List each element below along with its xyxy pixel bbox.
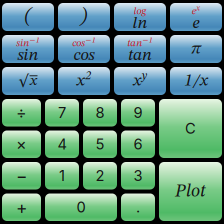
button[interactable]: ln: [114, 3, 166, 31]
button[interactable]: +: [2, 193, 41, 221]
button[interactable]: 7: [45, 99, 79, 126]
staticText: −: [16, 165, 27, 186]
button[interactable]: x to the 2: [58, 67, 110, 95]
staticText: .: [136, 198, 140, 216]
staticText: 1/x: [184, 72, 208, 90]
staticText: −1: [143, 36, 153, 44]
button[interactable]: Plot: [159, 162, 222, 221]
button[interactable]: 2: [83, 162, 117, 189]
button[interactable]: 4: [45, 130, 79, 158]
button[interactable]: ×: [2, 130, 41, 158]
staticText: 2: [85, 70, 91, 82]
staticText: 2: [95, 167, 104, 185]
button[interactable]: 0: [45, 193, 117, 221]
button[interactable]: cos: [58, 35, 110, 63]
staticText: e: [192, 6, 196, 17]
button[interactable]: 9: [121, 99, 155, 126]
staticText: 3: [133, 167, 142, 185]
staticText: x: [77, 72, 85, 90]
staticText: 6: [133, 135, 142, 153]
button[interactable]: −: [2, 162, 41, 189]
staticText: −1: [30, 36, 40, 44]
button[interactable]: ): [58, 3, 110, 31]
staticText: ÷: [16, 103, 27, 122]
staticText: sin: [17, 47, 38, 64]
button[interactable]: .: [121, 193, 155, 221]
staticText: 0: [76, 198, 85, 216]
staticText: 5: [95, 135, 104, 153]
button[interactable]: sin: [2, 35, 54, 63]
staticText: sin: [16, 38, 29, 49]
staticText: ln: [132, 15, 147, 32]
button[interactable]: 6: [121, 130, 155, 158]
button[interactable]: C: [159, 99, 222, 158]
button[interactable]: 1/x: [170, 67, 222, 95]
button[interactable]: square root: [2, 67, 54, 95]
button[interactable]: π: [170, 35, 222, 63]
staticText: 9: [133, 104, 142, 122]
button[interactable]: tan: [114, 35, 166, 63]
staticText: √: [18, 72, 29, 91]
staticText: x: [30, 73, 37, 89]
staticText: tan: [128, 47, 152, 64]
button[interactable]: (: [2, 3, 54, 31]
staticText: 8: [95, 104, 104, 122]
button[interactable]: 3: [121, 162, 155, 189]
button[interactable]: ÷: [2, 99, 41, 126]
staticText: C: [185, 120, 196, 137]
staticText: +: [16, 197, 27, 218]
staticText: cos: [73, 47, 94, 64]
button[interactable]: 5: [83, 130, 117, 158]
staticText: x: [196, 4, 200, 12]
staticText: ): [80, 7, 87, 27]
staticText: Plot: [175, 182, 206, 201]
staticText: 4: [57, 135, 66, 153]
staticText: π: [191, 40, 201, 58]
staticText: tan: [127, 38, 142, 49]
button[interactable]: e: [170, 3, 222, 31]
staticText: e: [192, 15, 199, 32]
staticText: cos: [72, 38, 85, 49]
staticText: 7: [58, 104, 66, 122]
staticText: y: [142, 70, 147, 82]
staticText: (: [24, 7, 31, 27]
button[interactable]: 8: [83, 99, 117, 126]
staticText: x: [133, 72, 141, 90]
staticText: log: [133, 6, 146, 17]
staticText: −1: [86, 36, 96, 44]
button[interactable]: 1: [45, 162, 79, 189]
staticText: 1: [59, 167, 65, 185]
staticText: ×: [16, 135, 27, 154]
button[interactable]: x to the y: [114, 67, 166, 95]
